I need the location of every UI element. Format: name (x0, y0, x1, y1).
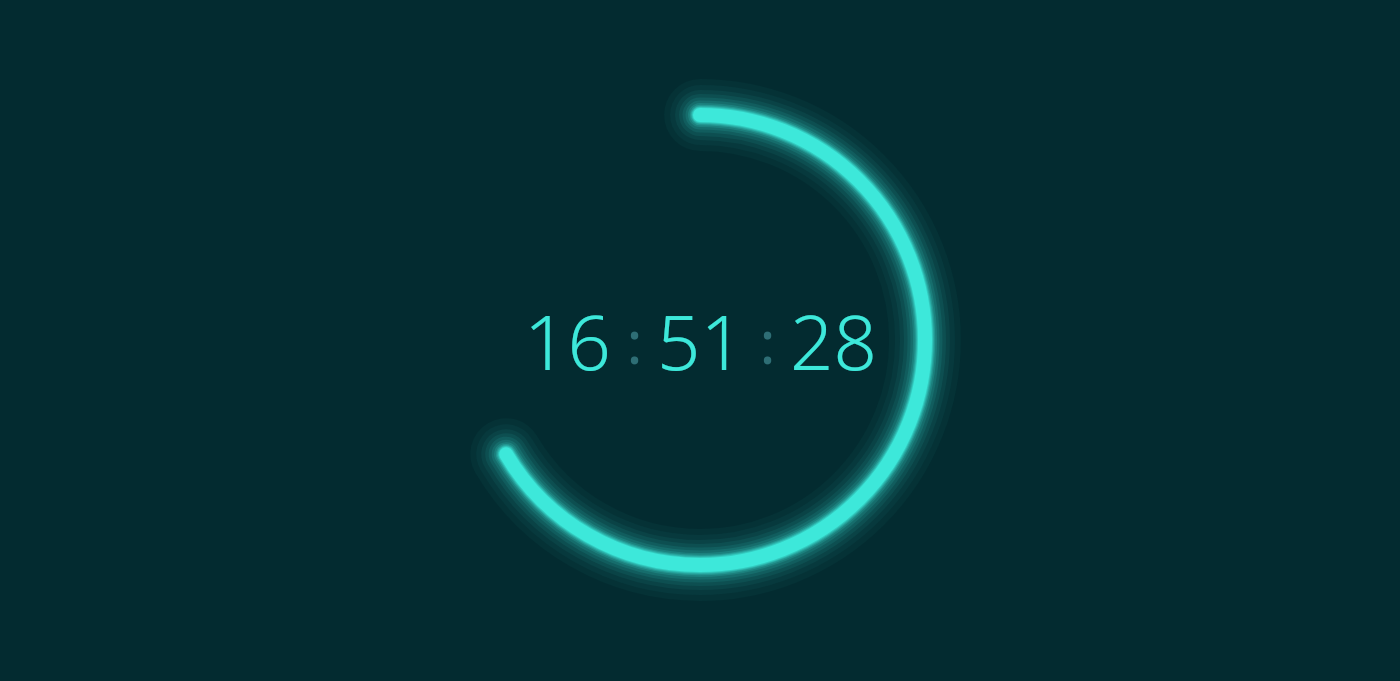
other: Countdown progress ring (0, 0, 1400, 681)
staticText: : (626, 300, 643, 382)
staticText: 16 (524, 289, 611, 393)
staticText: 51 (657, 289, 744, 393)
staticText: 28 (790, 289, 877, 393)
staticText: : (759, 300, 776, 382)
